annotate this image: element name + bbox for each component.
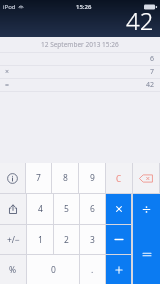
button[interactable]: 7 xyxy=(26,163,51,193)
staticText: % xyxy=(9,264,17,276)
button[interactable]: % xyxy=(0,255,26,284)
button[interactable]: +/− xyxy=(0,225,26,254)
button[interactable]: Minus xyxy=(106,225,131,254)
button[interactable]: 6 xyxy=(80,194,105,224)
staticText: . xyxy=(91,264,94,276)
button[interactable]: Plus xyxy=(106,255,131,284)
staticText: 42 xyxy=(126,4,154,37)
button[interactable]: 0 xyxy=(27,255,79,284)
staticText: 7 xyxy=(36,172,41,184)
button[interactable]: C xyxy=(106,163,132,193)
button[interactable]: Info xyxy=(0,163,25,193)
staticText: = xyxy=(5,80,10,90)
staticText: 5 xyxy=(64,203,69,215)
button[interactable]: Share xyxy=(0,194,26,224)
staticText: 0 xyxy=(51,264,56,276)
button[interactable]: Divide xyxy=(133,194,160,224)
staticText: × xyxy=(5,67,10,77)
staticText: 7 xyxy=(150,67,155,77)
staticText: 6 xyxy=(150,54,155,64)
button[interactable]: 1 xyxy=(27,225,53,254)
button[interactable]: 5 xyxy=(54,194,79,224)
staticText: 12 September 2013 15:26 xyxy=(41,40,119,49)
button[interactable]: 2 xyxy=(54,225,79,254)
staticText: 15:26 xyxy=(76,3,92,11)
staticText: 9 xyxy=(90,172,95,184)
button[interactable]: 9 xyxy=(79,163,105,193)
button[interactable]: 4 xyxy=(27,194,53,224)
button[interactable]: Multiply xyxy=(106,194,131,224)
staticText: 8 xyxy=(63,172,68,184)
button[interactable]: Equals xyxy=(133,224,160,284)
staticText: 2 xyxy=(64,234,69,246)
button[interactable]: 3 xyxy=(80,225,105,254)
button[interactable]: 8 xyxy=(52,163,78,193)
staticText: 6 xyxy=(90,203,95,215)
staticText: 1 xyxy=(38,234,43,246)
staticText: 42 xyxy=(146,80,155,90)
staticText: 4 xyxy=(38,203,43,215)
staticText: iPod xyxy=(3,3,16,11)
staticText: +/− xyxy=(7,234,20,246)
button[interactable]: Backspace xyxy=(133,163,159,193)
staticText: 3 xyxy=(90,234,95,246)
button[interactable]: . xyxy=(80,255,105,284)
staticText: C xyxy=(116,173,122,184)
